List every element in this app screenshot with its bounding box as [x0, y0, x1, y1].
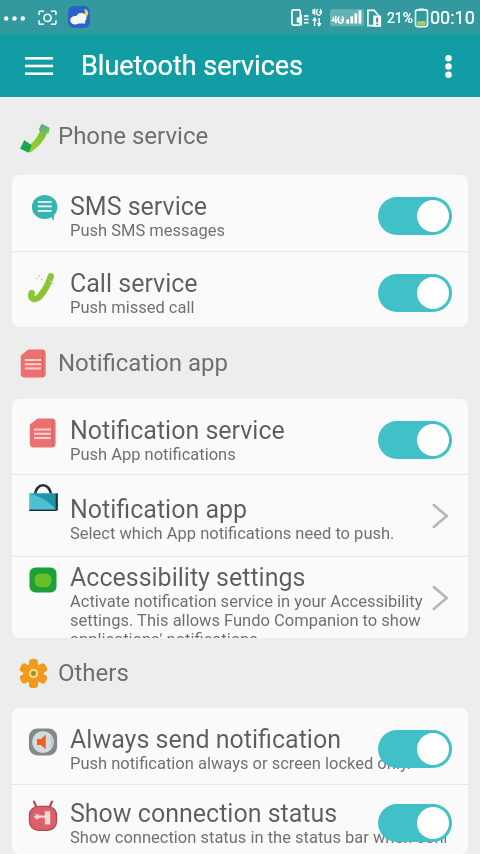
staticText: Push missed call — [70, 298, 195, 317]
button[interactable]: Toggle — [378, 804, 452, 842]
staticText: Bluetooth services — [81, 50, 304, 82]
staticText: Show connection status in the status bar… — [70, 828, 446, 847]
button[interactable]: More options — [424, 42, 472, 90]
staticText: Push notification always or screen locke… — [70, 754, 412, 773]
staticText: Show connection status — [70, 799, 338, 828]
button[interactable]: Accessibility settings — [12, 557, 468, 638]
button[interactable]: Notification service — [12, 399, 468, 474]
button[interactable]: Always send notification — [12, 708, 468, 784]
staticText: SMS service — [70, 192, 208, 221]
staticText: 00:10 — [430, 7, 475, 28]
button[interactable]: Toggle — [378, 421, 452, 459]
staticText: Push App notifications — [70, 445, 236, 464]
button[interactable]: Show connection status — [12, 785, 468, 854]
button[interactable]: Toggle — [378, 730, 452, 768]
staticText: Others — [58, 659, 129, 687]
button[interactable]: Open navigation menu — [13, 40, 65, 92]
staticText: Activate notification service in your Ac… — [70, 592, 426, 638]
button[interactable]: Toggle — [378, 197, 452, 235]
staticText: Phone service — [58, 122, 209, 150]
staticText: Call service — [70, 269, 198, 298]
button[interactable]: Notification app — [12, 475, 468, 556]
staticText: Push SMS messages — [70, 221, 226, 240]
button[interactable]: Toggle — [378, 274, 452, 312]
staticText: Notification app — [70, 495, 248, 524]
staticText: Notification service — [70, 416, 285, 445]
button[interactable]: Open — [428, 585, 452, 611]
staticText: Accessibility settings — [70, 563, 306, 592]
staticText: Select which App notifications need to p… — [70, 524, 395, 543]
button[interactable]: SMS service — [12, 175, 468, 251]
staticText: Always send notification — [70, 725, 341, 754]
button[interactable]: Open — [428, 503, 452, 529]
staticText: 21% — [387, 10, 413, 26]
staticText: Notification app — [58, 349, 229, 377]
button[interactable]: Call service — [12, 252, 468, 327]
